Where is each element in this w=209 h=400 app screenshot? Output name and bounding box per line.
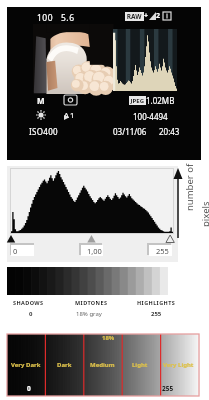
staticText: 2 xyxy=(156,11,161,21)
staticText: 5.6 xyxy=(61,12,75,24)
staticText: HIGHLIGHTS xyxy=(137,299,176,306)
staticText: number of xyxy=(183,163,195,211)
staticText: JPEG xyxy=(129,97,146,105)
staticText: 255 xyxy=(162,384,174,393)
staticText: 0 xyxy=(29,310,33,318)
staticText: Light xyxy=(132,361,148,369)
button[interactable]: Very Dark xyxy=(7,334,199,396)
staticText: 18% xyxy=(102,334,115,342)
staticText: Very Light xyxy=(163,361,194,369)
button[interactable]: 255 xyxy=(147,243,171,255)
staticText: 1 xyxy=(70,110,75,120)
button[interactable]: 1,00 xyxy=(79,243,102,255)
button[interactable]: 100 xyxy=(7,7,201,160)
staticText: pixels xyxy=(199,201,209,227)
button[interactable]: 0 xyxy=(7,166,178,262)
staticText: M xyxy=(37,95,45,106)
button[interactable]: 0 xyxy=(10,243,34,255)
staticText: 1.02MB xyxy=(146,95,175,106)
staticText: 20:43 xyxy=(159,126,180,137)
staticText: MIDTONES xyxy=(75,299,108,306)
staticText: 100 xyxy=(37,12,54,24)
staticText: 18% gray xyxy=(76,310,102,318)
staticText: + xyxy=(144,11,149,21)
staticText: 1,00 xyxy=(87,246,102,256)
staticText: ISO400 xyxy=(29,126,58,137)
staticText: 03/11/06 xyxy=(113,126,147,137)
staticText: 100-4494 xyxy=(133,111,168,122)
staticText: Very Dark xyxy=(11,361,41,369)
staticText: 0 xyxy=(13,246,18,256)
staticText: Medium xyxy=(90,361,115,369)
staticText: 255 xyxy=(151,310,162,318)
staticText: SHADOWS xyxy=(13,299,44,306)
staticText: 255 xyxy=(156,246,169,256)
staticText: 0 xyxy=(27,384,31,393)
staticText: RAW xyxy=(125,12,144,21)
staticText: Dark xyxy=(57,361,72,369)
staticText: A xyxy=(64,110,69,120)
